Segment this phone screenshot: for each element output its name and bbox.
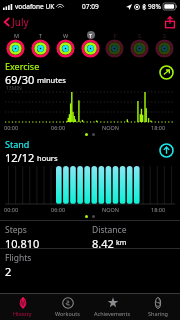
staticText: 06:00	[51, 206, 66, 213]
staticText: S	[138, 32, 142, 39]
staticText: hours	[37, 153, 58, 163]
button[interactable]: Steps	[0, 221, 90, 248]
staticText: 8.42	[92, 236, 114, 248]
staticText: 10,810	[5, 236, 40, 248]
button[interactable]: Distance	[90, 221, 180, 248]
staticText: M	[14, 32, 19, 39]
button[interactable]: S	[130, 31, 149, 58]
button[interactable]: T	[31, 31, 50, 58]
staticText: F	[114, 32, 117, 39]
staticText: NOON	[102, 206, 119, 213]
staticText: Exercise	[5, 60, 40, 72]
staticText: Steps	[5, 224, 27, 236]
staticText: 13MIN	[6, 85, 22, 92]
staticText: 07:09	[82, 2, 99, 11]
staticText: 69/30	[5, 72, 35, 85]
button[interactable]: F	[105, 31, 124, 58]
button[interactable]: M	[6, 31, 25, 58]
staticText: W	[63, 32, 69, 39]
staticText: 12/12	[5, 150, 35, 163]
staticText: T	[89, 32, 93, 39]
button[interactable]: W	[56, 31, 75, 58]
staticText: Workouts	[55, 310, 80, 317]
button[interactable]: July	[0, 13, 35, 31]
staticText: km	[116, 238, 127, 248]
staticText: NOON	[102, 124, 119, 131]
staticText: 06:00	[51, 124, 66, 131]
staticText: Achievements	[94, 310, 131, 317]
staticText: T	[39, 32, 43, 39]
staticText: 2	[5, 264, 12, 279]
button[interactable]: S	[155, 31, 174, 58]
button[interactable]: T	[81, 31, 100, 58]
button[interactable]: Flights	[0, 249, 180, 279]
button[interactable]: Stand detail	[159, 143, 174, 158]
button[interactable]: Sharing	[135, 294, 180, 320]
staticText: Distance	[92, 224, 127, 236]
staticText: 18:00	[151, 206, 166, 213]
button[interactable]: Workouts	[45, 294, 90, 320]
staticText: July	[12, 15, 29, 29]
button[interactable]: Exercise detail	[159, 65, 174, 80]
button[interactable]: Share	[165, 14, 180, 30]
staticText: 98%	[148, 2, 161, 11]
staticText: History	[13, 310, 32, 317]
button[interactable]: Achievements	[90, 294, 135, 320]
staticText: 00:00	[4, 124, 19, 131]
staticText: minutes	[37, 75, 66, 85]
staticText: Stand	[5, 138, 30, 150]
button[interactable]: History	[0, 294, 45, 320]
staticText: vodafone UK	[15, 2, 55, 11]
staticText: 18:00	[151, 124, 166, 131]
staticText: S	[163, 32, 167, 39]
staticText: Flights	[5, 252, 32, 264]
staticText: 00:00	[4, 206, 19, 213]
staticText: Sharing	[148, 310, 168, 317]
